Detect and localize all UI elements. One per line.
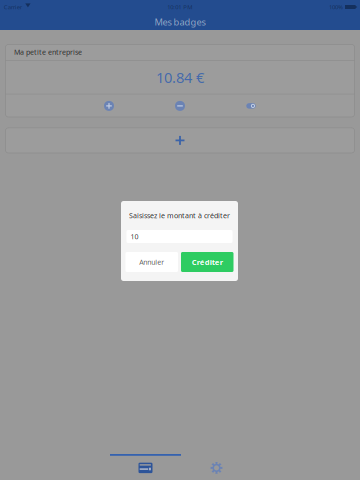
staticText: 100% (329, 3, 343, 11)
button[interactable]: Réglages (181, 454, 252, 480)
button[interactable]: Annuler (125, 252, 178, 272)
button[interactable]: Activer le badge (215, 94, 286, 117)
staticText: Annuler (139, 257, 164, 267)
button[interactable]: Badges (110, 454, 181, 480)
button[interactable]: Créditer (181, 252, 233, 272)
staticText: Mes badges (154, 16, 205, 28)
button[interactable]: Créditer (73, 94, 144, 117)
staticText: 10:01 PM (167, 3, 192, 11)
staticText: Carrier (4, 3, 22, 11)
button[interactable]: Débiter (144, 94, 215, 117)
staticText: 10.84 € (156, 67, 204, 87)
button[interactable]: Ajouter une entreprise (5, 127, 355, 153)
staticText: Créditer (192, 257, 223, 267)
staticText: 10 (130, 232, 138, 241)
staticText: Ma petite entreprise (14, 47, 82, 57)
staticText: Saisissez le montant à créditer (129, 211, 230, 220)
